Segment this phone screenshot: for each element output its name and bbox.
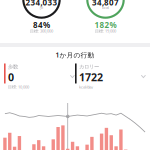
- button[interactable]: カロリー: [75, 63, 146, 89]
- button[interactable]: 234,033: [0, 0, 150, 43]
- staticText: kcal: [102, 5, 109, 10]
- staticText: 目標: 19,000: [95, 28, 116, 34]
- staticText: 歩: [39, 5, 43, 10]
- staticText: 84%: [33, 20, 50, 30]
- staticText: 1か月の行動: [55, 51, 94, 59]
- staticText: 234,033: [25, 0, 57, 8]
- button[interactable]: 34,807: [0, 0, 150, 43]
- staticText: 1722: [79, 70, 103, 84]
- staticText: kcal/day: [79, 84, 93, 89]
- staticText: 0: [8, 70, 14, 84]
- staticText: 歩数: [8, 63, 18, 70]
- staticText: 34,807: [92, 0, 119, 8]
- staticText: 目標: 300,000: [30, 28, 53, 34]
- button[interactable]: 歩数: [4, 63, 75, 89]
- staticText: 182%: [94, 20, 116, 30]
- staticText: 目標: 10,000: [8, 84, 29, 89]
- staticText: カロリー: [79, 63, 99, 70]
